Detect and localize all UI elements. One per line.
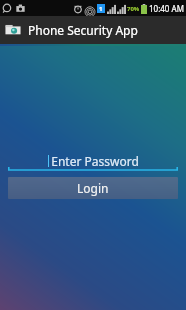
button[interactable]: Login [8,177,178,199]
staticText: Phone Security App [28,22,138,38]
button[interactable]: Enter Password [8,150,178,171]
staticText: 10:40 AM [149,3,184,14]
staticText: 70% [127,5,140,13]
staticText: 1 [99,5,103,13]
staticText: Login [77,180,109,196]
staticText: Enter Password [51,153,139,169]
